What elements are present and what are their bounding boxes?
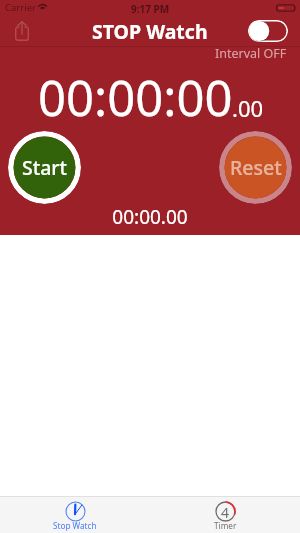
button[interactable]: Interval toggle [248,20,288,42]
button[interactable]: Reset [219,131,292,204]
staticText: Start [22,154,68,181]
staticText: STOP Watch [92,18,208,45]
staticText: Stop Watch [53,520,97,531]
staticText: .00 [232,93,264,123]
staticText: 4 [221,503,230,522]
staticText: Timer [214,520,237,531]
button[interactable]: Start [8,131,81,204]
staticText: Carrier [5,1,36,14]
button[interactable]: Stop Watch [0,497,150,533]
button[interactable]: 4 [150,497,300,533]
button[interactable]: Share [8,17,36,45]
staticText: Interval OFF [215,45,287,62]
staticText: 00:00.00 [0,204,300,230]
staticText: 00:00:00 [38,64,233,131]
staticText: 9:17 PM [131,2,170,16]
staticText: Reset [230,154,282,181]
